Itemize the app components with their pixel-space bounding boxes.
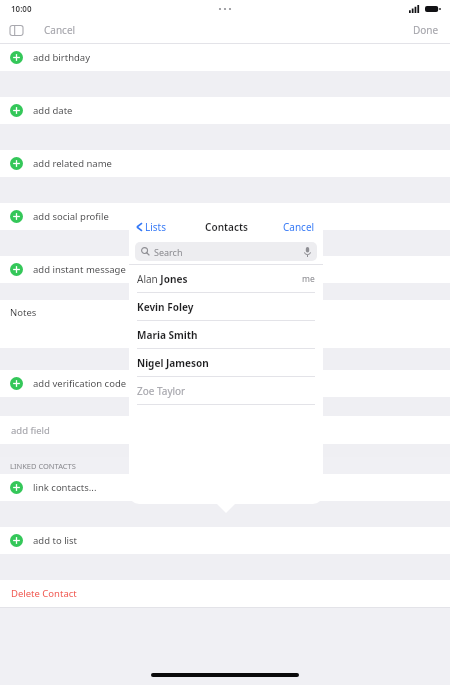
staticText: add date [33,104,73,117]
staticText: Contacts [205,220,248,234]
staticText: Notes [10,306,37,319]
staticText: add field [11,424,50,437]
staticText: Delete Contact [11,587,77,600]
button[interactable]: Done [413,23,439,37]
button[interactable]: add verification code [0,370,450,397]
button[interactable]: Maria Smith [129,321,323,348]
button[interactable]: add social profile [0,203,450,230]
button[interactable]: link contacts... [0,474,450,501]
staticText: link contacts... [33,481,97,494]
button[interactable]: Show sidebar [9,23,24,38]
button[interactable]: add field [0,416,450,444]
button[interactable]: add birthday [0,44,450,71]
staticText: Search [154,246,183,258]
staticText: add to list [33,534,78,547]
staticText: Lists [145,220,167,234]
button[interactable]: Lists [136,220,167,234]
button[interactable]: add date [0,97,450,124]
button[interactable]: Cancel [44,23,76,37]
button[interactable]: Delete Contact [0,580,450,607]
staticText: Nigel Jameson [137,356,209,370]
button[interactable]: Notes [0,300,450,348]
button[interactable]: Alan Jones [129,265,323,292]
button[interactable]: Nigel Jameson [129,349,323,376]
button[interactable]: add to list [0,527,450,554]
button[interactable]: Kevin Foley [129,293,323,320]
staticText: Kevin Foley [137,300,194,314]
staticText: add social profile [33,210,109,223]
button[interactable]: add related name [0,150,450,177]
button[interactable]: Cancel [283,220,315,234]
button[interactable]: Zoe Taylor [129,377,323,404]
button[interactable]: Search [135,242,317,261]
staticText: add related name [33,157,112,170]
button[interactable]: add instant message [0,256,450,283]
staticText: add verification code [33,377,127,390]
staticText: Zoe Taylor [137,384,186,398]
staticText: me [302,273,315,285]
staticText: Maria Smith [137,328,198,342]
staticText: 10:00 [11,3,32,14]
staticText: add birthday [33,51,91,64]
staticText: LINKED CONTACTS [10,461,76,471]
staticText: add instant message [33,263,126,276]
staticText: Alan Jones [137,272,188,286]
